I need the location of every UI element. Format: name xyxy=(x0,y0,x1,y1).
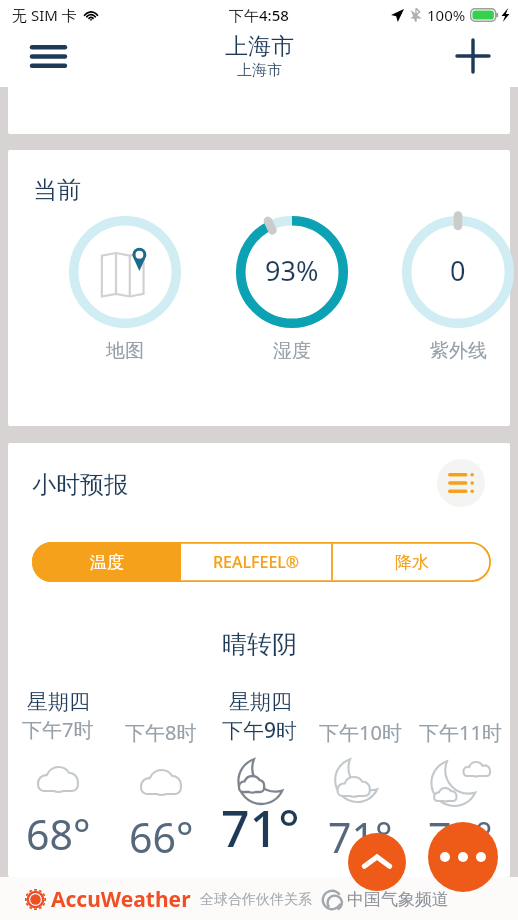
button[interactable]: Scroll to top xyxy=(348,833,406,891)
staticText: 星期四 xyxy=(27,689,90,715)
staticText: 全球合作伙伴关系 xyxy=(200,891,312,909)
staticText: 下午4:58 xyxy=(229,5,289,25)
staticText: 71° xyxy=(328,809,393,865)
staticText: 星期四 xyxy=(229,689,292,715)
staticText: 下午10时 xyxy=(319,719,402,746)
button[interactable]: 降水 xyxy=(332,542,491,582)
staticText: AccuWeather xyxy=(51,885,191,914)
staticText: 66° xyxy=(129,809,194,865)
staticText: 0 xyxy=(450,252,466,289)
button[interactable]: 星期四 xyxy=(8,689,108,864)
button[interactable]: More options xyxy=(428,822,498,892)
button[interactable]: REALFEEL® xyxy=(181,542,332,582)
button[interactable]: 地图 xyxy=(65,216,185,363)
staticText: 下午9时 xyxy=(222,716,298,745)
staticText: 晴转阴 xyxy=(222,629,297,660)
button[interactable]: 0 xyxy=(398,216,518,363)
staticText: 100% xyxy=(427,5,466,25)
button[interactable]: 星期四 xyxy=(210,689,310,874)
button[interactable]: Add location xyxy=(445,33,501,79)
button[interactable]: 93% xyxy=(232,216,352,363)
button[interactable]: 下午11时 xyxy=(410,689,510,867)
staticText: 无 SIM 卡 xyxy=(12,5,77,25)
staticText: REALFEEL® xyxy=(213,551,300,573)
button[interactable]: Menu xyxy=(20,33,76,79)
staticText: 湿度 xyxy=(273,339,311,363)
button[interactable]: List view xyxy=(437,459,485,507)
button[interactable]: 温度 xyxy=(32,542,181,582)
staticText: 下午8时 xyxy=(125,719,197,746)
staticText: 68° xyxy=(26,806,91,862)
button[interactable]: 下午8时 xyxy=(111,689,211,867)
staticText: 71° xyxy=(221,794,300,862)
button[interactable]: 下午10时 xyxy=(310,689,410,867)
staticText: 93% xyxy=(265,252,319,289)
staticText: 下午7时 xyxy=(22,716,94,743)
staticText: 地图 xyxy=(106,339,144,363)
staticText: 降水 xyxy=(395,552,429,573)
staticText: 当前 xyxy=(33,175,81,205)
staticText: 上海市 xyxy=(237,61,282,80)
staticText: 上海市 xyxy=(225,32,294,61)
staticText: 下午11时 xyxy=(419,719,502,746)
staticText: 紫外线 xyxy=(430,339,487,363)
staticText: 中国气象频道 xyxy=(347,889,449,910)
staticText: 小时预报 xyxy=(32,470,128,500)
staticText: 温度 xyxy=(90,552,124,573)
staticText: 70° xyxy=(428,809,493,865)
